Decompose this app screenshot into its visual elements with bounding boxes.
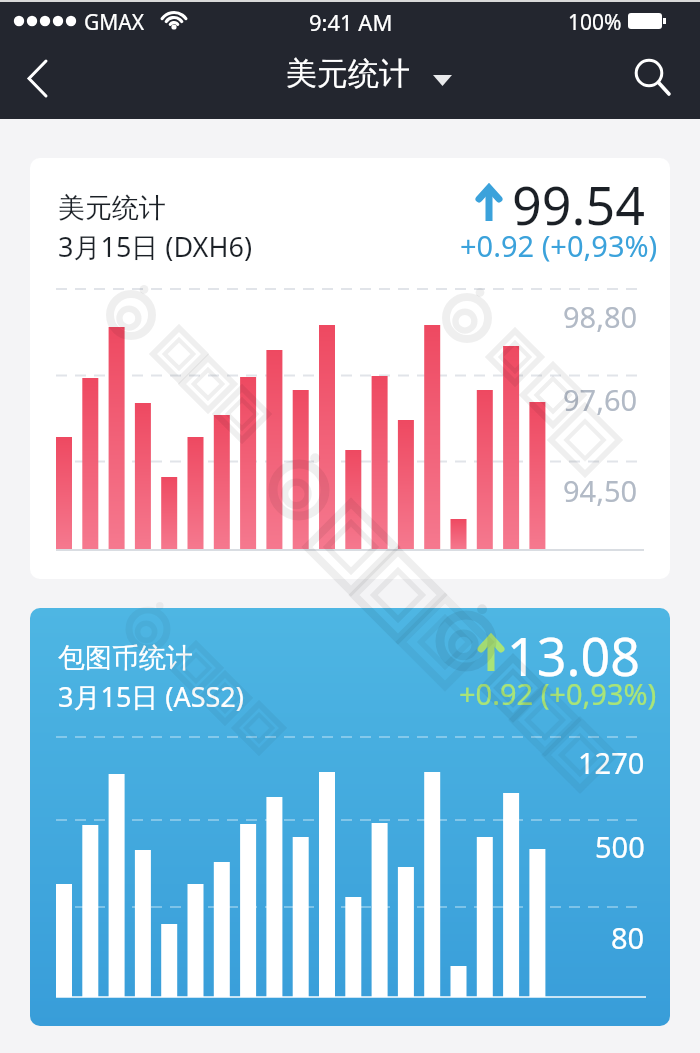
staticText: 500 — [595, 827, 645, 866]
staticText: 80 — [611, 918, 645, 957]
staticText: 美元统计 — [286, 54, 410, 93]
staticText: 94,50 — [563, 471, 638, 510]
staticText: 98,80 — [563, 297, 638, 336]
staticText: 100% — [568, 8, 622, 37]
button[interactable]: 美元统计 — [280, 50, 460, 105]
staticText: 3月15日 (DXH6) — [58, 228, 252, 265]
staticText: 包图币统计 — [58, 641, 193, 675]
button[interactable]: 包图币统计 — [30, 608, 670, 1026]
staticText: +0.92 (+0,93%) — [460, 226, 658, 265]
staticText: GMAX — [84, 8, 145, 37]
button[interactable]: 美元统计 — [30, 158, 670, 579]
staticText: 3月15日 (ASS2) — [58, 678, 244, 715]
staticText: 99.54 — [512, 169, 645, 240]
staticText: 13.08 — [507, 620, 640, 691]
staticText: 97,60 — [563, 380, 638, 419]
staticText: +0.92 (+0,93%) — [459, 674, 657, 713]
button[interactable] — [625, 50, 677, 102]
staticText: 1270 — [578, 743, 645, 782]
button[interactable] — [8, 50, 64, 106]
staticText: 美元统计 — [58, 191, 166, 225]
staticText: 9:41 AM — [309, 7, 393, 37]
